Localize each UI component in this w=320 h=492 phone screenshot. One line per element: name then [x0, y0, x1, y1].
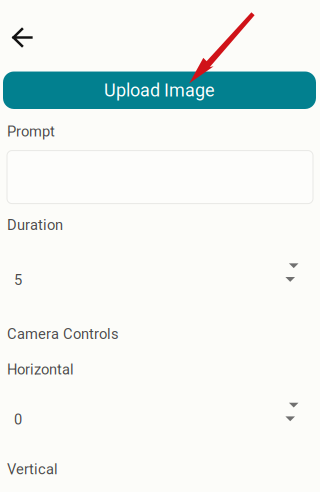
- staticText: 0: [14, 411, 22, 428]
- staticText: Duration: [7, 216, 63, 234]
- staticText: 5: [14, 271, 22, 289]
- button[interactable]: Back: [0, 0, 47, 67]
- staticText: Prompt: [7, 123, 55, 140]
- staticText: Vertical: [7, 461, 58, 478]
- button[interactable]: Upload Image: [3, 71, 316, 109]
- staticText: Camera Controls: [7, 325, 119, 343]
- staticText: Horizontal: [7, 361, 74, 378]
- staticText: Upload Image: [104, 80, 215, 101]
